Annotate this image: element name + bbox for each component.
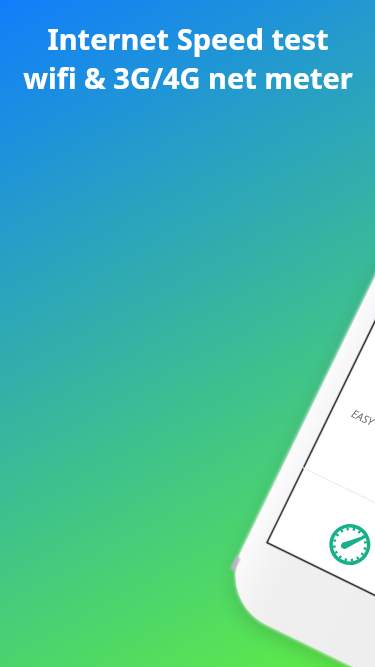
staticText: wifi & 3G/4G net meter	[23, 58, 353, 97]
staticText: Internet Speed test	[47, 19, 329, 58]
